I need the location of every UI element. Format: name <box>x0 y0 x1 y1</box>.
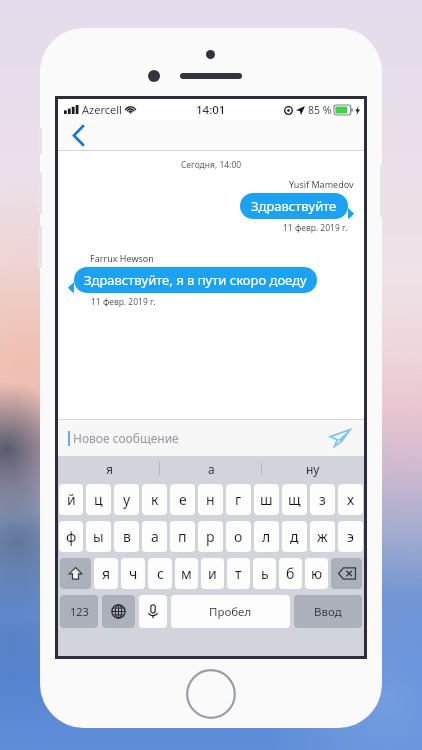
button[interactable]: а <box>160 456 262 481</box>
staticText: а <box>208 461 215 477</box>
staticText: я <box>106 461 113 477</box>
staticText: Здравствуйте, я в пути скоро доеду <box>84 271 307 289</box>
button[interactable]: х <box>338 484 363 515</box>
button[interactable]: э <box>338 521 363 552</box>
button[interactable]: в <box>114 521 139 552</box>
staticText: 11 февр. 2019 г. <box>283 222 348 234</box>
button[interactable]: г <box>226 484 251 515</box>
staticText: Новое сообщение <box>73 430 179 446</box>
button[interactable]: Здравствуйте, я в пути скоро доеду <box>74 267 317 293</box>
button[interactable]: ц <box>86 484 111 515</box>
staticText: т <box>235 564 242 583</box>
button[interactable]: Dictate <box>139 595 167 628</box>
button[interactable]: Backspace <box>331 558 362 589</box>
staticText: е <box>179 490 187 509</box>
button[interactable]: н <box>198 484 223 515</box>
staticText: Yusif Mamedov <box>289 178 354 190</box>
button[interactable]: д <box>282 521 307 552</box>
staticText: у <box>123 490 131 509</box>
button[interactable]: Shift <box>60 558 91 589</box>
button[interactable]: я <box>58 456 160 481</box>
staticText: 11 февр. 2019 г. <box>91 296 156 308</box>
staticText: б <box>286 564 295 583</box>
staticText: м <box>181 564 192 583</box>
staticText: к <box>151 490 159 509</box>
staticText: ф <box>66 527 77 546</box>
staticText: 85 % <box>308 103 332 117</box>
staticText: ж <box>317 527 328 546</box>
staticText: 14:01 <box>196 102 226 118</box>
button[interactable]: ы <box>86 521 111 552</box>
button[interactable]: ж <box>310 521 335 552</box>
staticText: г <box>235 490 242 509</box>
staticText: ы <box>93 527 104 546</box>
button[interactable]: ш <box>254 484 279 515</box>
button[interactable]: п <box>170 521 195 552</box>
staticText: ц <box>94 490 103 509</box>
staticText: Пробел <box>209 604 252 620</box>
staticText: Ввод <box>314 604 342 620</box>
staticText: ну <box>306 461 320 477</box>
button[interactable]: и <box>201 558 224 589</box>
button[interactable]: м <box>175 558 198 589</box>
button[interactable]: 123 <box>60 595 98 628</box>
button[interactable]: л <box>254 521 279 552</box>
staticText: ю <box>311 564 323 583</box>
staticText: х <box>347 490 355 509</box>
staticText: д <box>290 527 299 546</box>
staticText: э <box>347 527 354 546</box>
button[interactable]: у <box>114 484 139 515</box>
staticText: ш <box>260 490 273 509</box>
staticText: Здравствуйте <box>251 197 337 215</box>
staticText: с <box>157 564 164 583</box>
button[interactable]: к <box>142 484 167 515</box>
staticText: н <box>206 490 215 509</box>
button[interactable]: ф <box>59 521 83 552</box>
staticText: о <box>234 527 243 546</box>
button[interactable]: Здравствуйте <box>240 193 348 219</box>
button[interactable]: Send <box>324 423 354 453</box>
staticText: Farrux Hewson <box>90 252 154 264</box>
staticText: Сегодня, 14:00 <box>58 159 364 171</box>
button[interactable]: с <box>148 558 172 589</box>
staticText: 123 <box>70 604 89 619</box>
staticText: а <box>151 527 159 546</box>
button[interactable]: е <box>170 484 195 515</box>
button[interactable]: ну <box>262 456 364 481</box>
button[interactable]: Ввод <box>294 595 362 628</box>
staticText: ь <box>261 564 269 583</box>
button[interactable]: я <box>94 558 118 589</box>
staticText: и <box>208 564 217 583</box>
button[interactable]: р <box>198 521 223 552</box>
button[interactable]: щ <box>282 484 307 515</box>
button[interactable]: ю <box>305 558 328 589</box>
staticText: Azercell <box>82 102 122 117</box>
staticText: я <box>102 564 111 583</box>
button[interactable]: ь <box>253 558 276 589</box>
staticText: в <box>123 527 131 546</box>
staticText: з <box>319 490 326 509</box>
button[interactable]: Change keyboard <box>102 595 135 628</box>
button[interactable]: з <box>310 484 335 515</box>
button[interactable]: а <box>142 521 167 552</box>
button[interactable]: й <box>59 484 83 515</box>
staticText: ч <box>129 564 138 583</box>
staticText: й <box>67 490 76 509</box>
button[interactable]: Новое сообщение <box>68 430 324 446</box>
staticText: л <box>262 527 271 546</box>
staticText: п <box>178 527 187 546</box>
button[interactable]: Пробел <box>171 595 290 628</box>
button[interactable]: о <box>226 521 251 552</box>
button[interactable]: б <box>279 558 302 589</box>
staticText: р <box>206 527 215 546</box>
button[interactable]: Back <box>62 120 94 151</box>
button[interactable]: ч <box>121 558 145 589</box>
button[interactable]: т <box>227 558 250 589</box>
staticText: щ <box>288 490 301 509</box>
